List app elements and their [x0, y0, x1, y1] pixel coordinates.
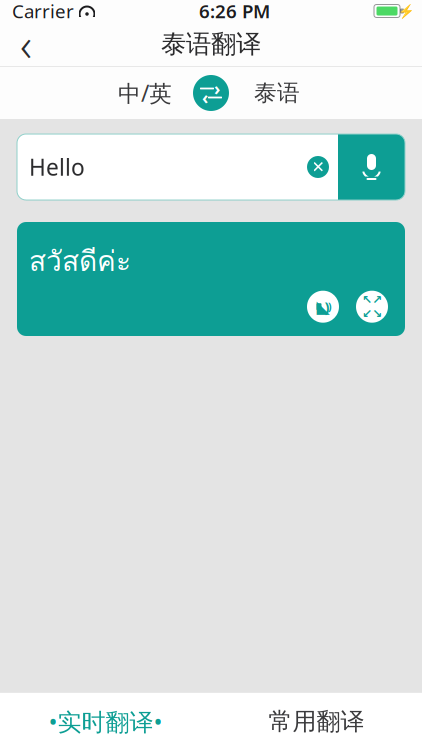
staticText: ‹	[202, 86, 208, 109]
staticText: ‹	[20, 14, 32, 74]
button[interactable]: Fullscreen	[356, 291, 388, 323]
staticText: Carrier	[12, 0, 74, 23]
button[interactable]: 常用翻译	[211, 693, 422, 750]
staticText: ◣	[316, 297, 329, 317]
button[interactable]: Back	[0, 22, 52, 66]
staticText: ✕	[311, 158, 324, 176]
button[interactable]: Clear text	[298, 134, 338, 200]
staticText: 泰语翻译	[161, 28, 261, 59]
staticText: ›	[214, 77, 220, 100]
staticText: 中/英	[118, 78, 172, 108]
staticText: 泰语	[254, 79, 300, 107]
button[interactable]: Voice input	[338, 134, 405, 200]
staticText: ↖	[362, 293, 372, 307]
staticText: สวัสดีค่ะ	[29, 239, 131, 283]
staticText: ↗	[372, 293, 382, 307]
staticText: ⚡	[397, 3, 414, 19]
staticText: Hello	[29, 152, 85, 182]
staticText: )	[324, 297, 329, 316]
button[interactable]: 中/英	[113, 73, 177, 113]
staticText: 常用翻译	[268, 707, 364, 736]
button[interactable]: •实时翻译•	[0, 693, 211, 750]
staticText: •实时翻译•	[48, 706, 162, 737]
staticText: 6:26 PM	[199, 0, 270, 23]
staticText: ↘	[372, 307, 382, 320]
staticText: ↙	[362, 307, 372, 320]
button[interactable]: Play pronunciation	[307, 291, 339, 323]
staticText: )	[328, 300, 332, 314]
button[interactable]: 泰语	[245, 73, 309, 113]
button[interactable]: Swap languages	[191, 73, 231, 113]
